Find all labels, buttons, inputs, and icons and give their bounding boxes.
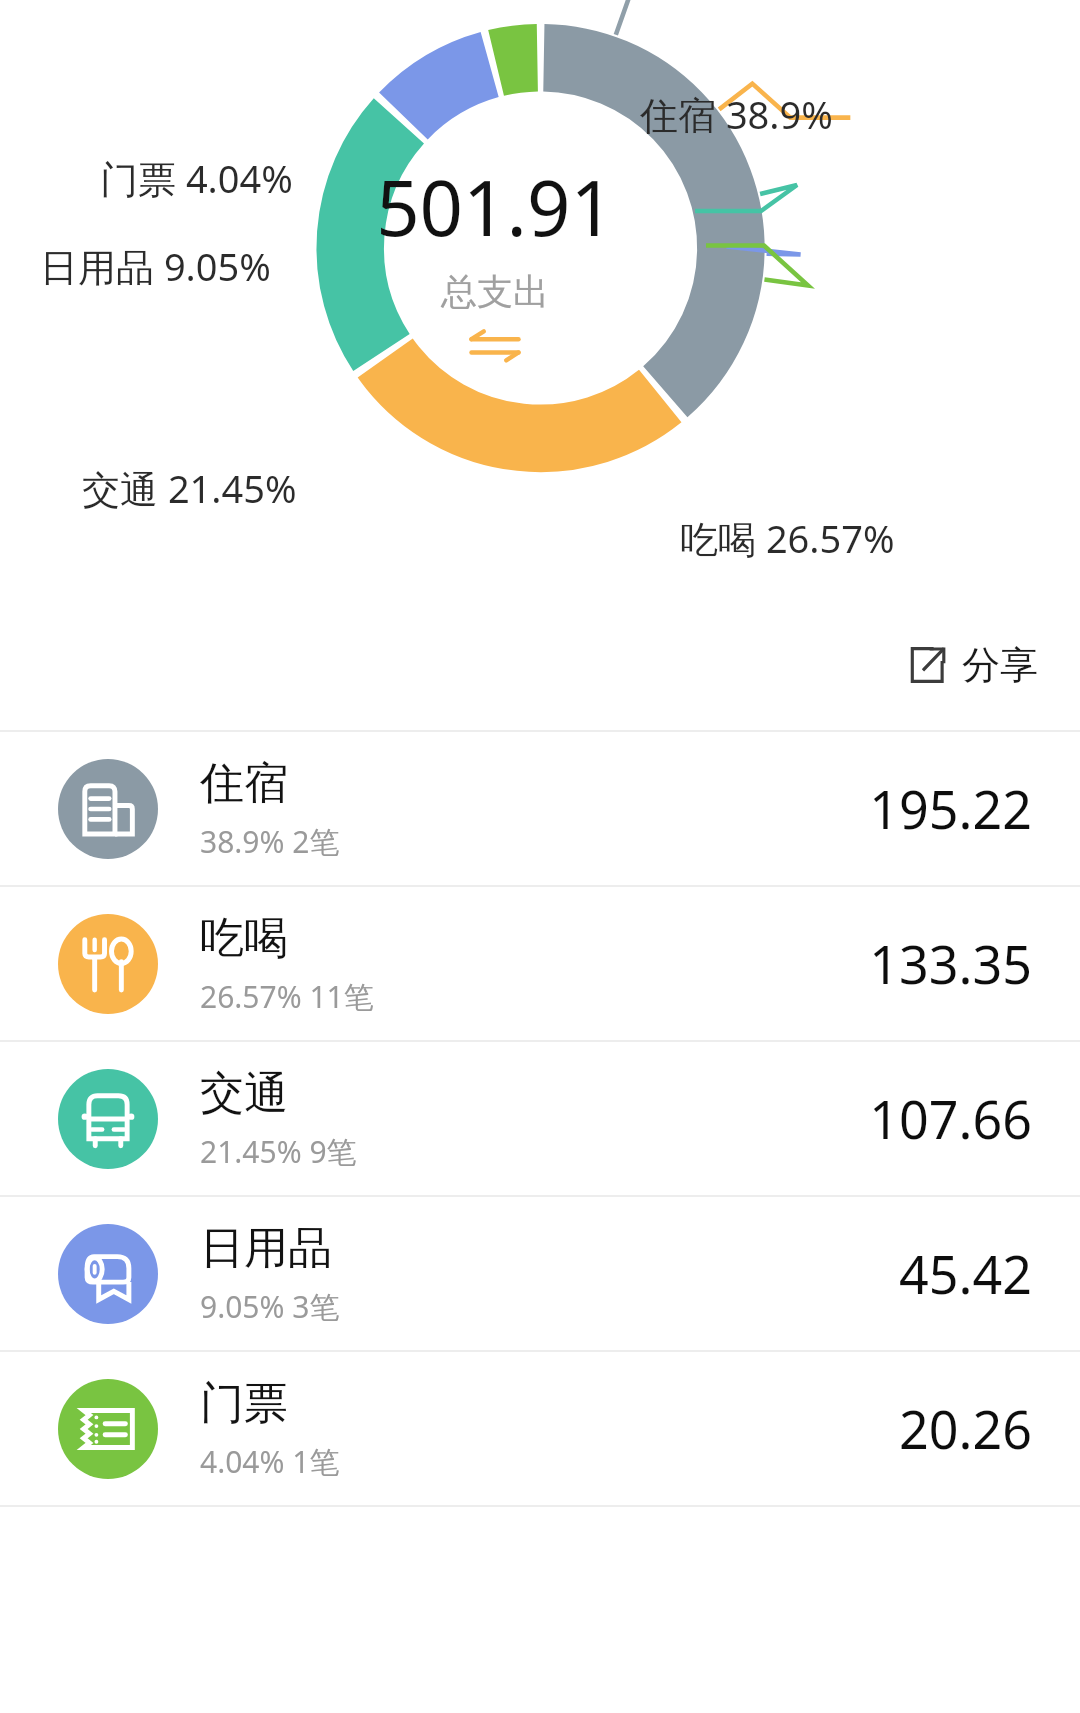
staticText: 195.22 [869,773,1032,844]
staticText: 501.91 [376,155,614,259]
staticText: 门票 4.04% [100,152,293,204]
button[interactable]: 切换 [465,326,525,364]
button[interactable]: 分享 [898,633,1046,697]
button[interactable]: 住宿 [0,732,1080,885]
staticText: 总支出 [441,269,549,314]
staticText: 住宿 38.9% [640,88,833,140]
button[interactable]: 门票 [0,1352,1080,1505]
staticText: 吃喝 26.57% [680,512,895,564]
button[interactable]: 交通 [0,1042,1080,1195]
staticText: 交通 21.45% [82,462,297,514]
staticText: 133.35 [869,928,1032,999]
staticText: 20.26 [899,1393,1032,1464]
staticText: 门票 [200,1376,288,1431]
staticText: 107.66 [869,1083,1032,1154]
staticText: 住宿 [200,756,288,811]
staticText: 21.45% 9笔 [200,1131,357,1172]
staticText: 9.05% 3笔 [200,1286,340,1327]
staticText: 26.57% 11笔 [200,976,374,1017]
staticText: 交通 [200,1066,288,1121]
button[interactable]: 吃喝 [0,887,1080,1040]
staticText: 日用品 [200,1221,332,1276]
button[interactable]: 日用品 [0,1197,1080,1350]
staticText: 吃喝 [200,911,288,966]
staticText: 分享 [962,641,1038,689]
staticText: 日用品 9.05% [40,240,271,292]
staticText: 4.04% 1笔 [200,1441,340,1482]
staticText: 45.42 [899,1238,1032,1309]
staticText: 38.9% 2笔 [200,821,340,862]
